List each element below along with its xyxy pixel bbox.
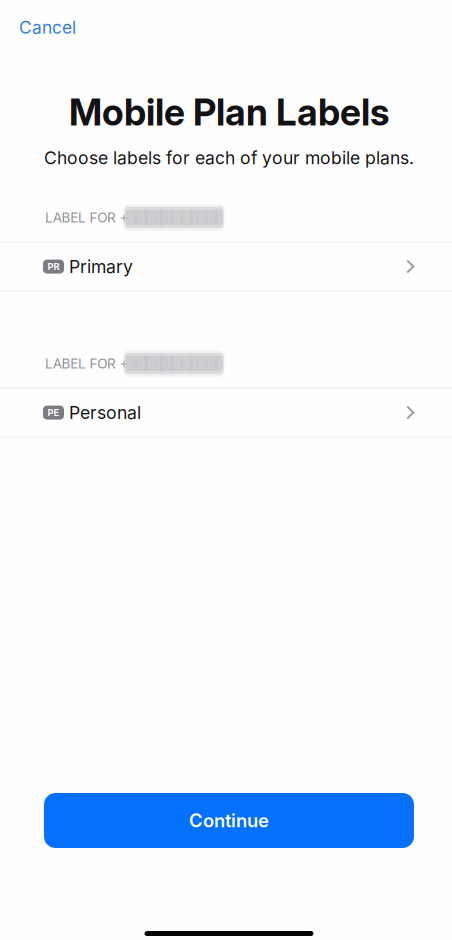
button[interactable]: PE — [0, 388, 452, 438]
staticText: Personal — [69, 402, 141, 423]
staticText: Choose labels for each of your mobile pl… — [44, 147, 414, 169]
staticText: PE — [47, 407, 59, 418]
staticText: LABEL FOR + — [45, 355, 128, 372]
staticText: Primary — [69, 256, 133, 277]
button[interactable]: Continue — [44, 793, 414, 848]
button[interactable]: Cancel — [0, 9, 90, 46]
staticText: Mobile Plan Labels — [69, 90, 389, 134]
staticText: Continue — [189, 809, 269, 832]
staticText: Cancel — [19, 17, 76, 38]
staticText: LABEL FOR + — [45, 209, 128, 226]
staticText: PR — [47, 261, 59, 272]
button[interactable]: PR — [0, 242, 452, 292]
